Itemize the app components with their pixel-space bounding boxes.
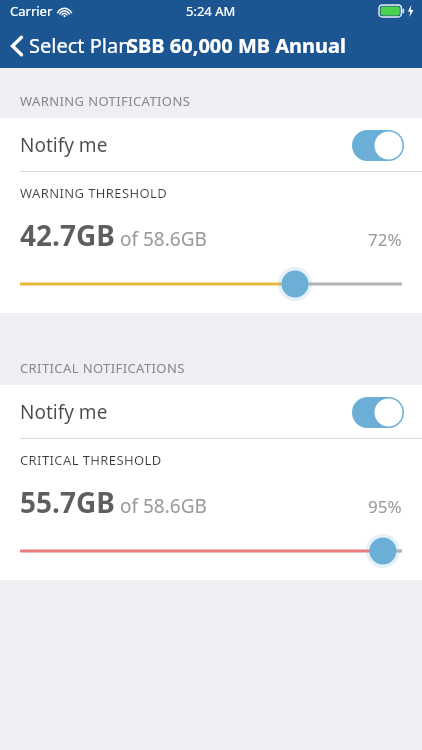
staticText: 95% bbox=[368, 495, 402, 518]
staticText: Carrier bbox=[10, 2, 53, 20]
staticText: WARNING NOTIFICATIONS bbox=[20, 92, 191, 110]
staticText: of 58.6GB bbox=[120, 493, 207, 519]
button[interactable]: Notify me bbox=[0, 118, 422, 172]
staticText: WARNING THRESHOLD bbox=[20, 184, 168, 202]
staticText: SBB 60,000 MB Annual bbox=[127, 32, 347, 59]
button[interactable] bbox=[0, 534, 422, 568]
button[interactable]: Notify me bbox=[0, 385, 422, 439]
staticText: Notify me bbox=[20, 399, 108, 425]
staticText: CRITICAL NOTIFICATIONS bbox=[20, 359, 185, 377]
button[interactable]: Back bbox=[10, 32, 131, 59]
other: Back bbox=[10, 35, 24, 57]
staticText: of 58.6GB bbox=[120, 226, 207, 252]
staticText: 72% bbox=[368, 228, 402, 251]
staticText: 5:24 AM bbox=[186, 2, 236, 20]
button[interactable]: Notify me toggle bbox=[352, 397, 404, 428]
button[interactable]: Notify me toggle bbox=[352, 130, 404, 161]
staticText: 42.7GB bbox=[20, 216, 115, 254]
staticText: Select Plan bbox=[29, 32, 131, 59]
button[interactable] bbox=[0, 267, 422, 301]
staticText: Notify me bbox=[20, 132, 108, 158]
staticText: CRITICAL THRESHOLD bbox=[20, 451, 162, 469]
staticText: 55.7GB bbox=[20, 483, 115, 521]
